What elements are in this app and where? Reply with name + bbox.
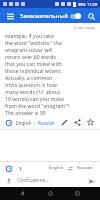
staticText: English (49, 165, 64, 171)
staticText: Сообщение... (17, 177, 50, 184)
staticText: from the word "anagram"? (5, 102, 70, 109)
button[interactable]: Voice input (4, 176, 13, 185)
staticText: English (16, 120, 32, 126)
staticText: 10 words) can you make (5, 95, 64, 102)
staticText: Y (19, 165, 23, 173)
staticText: 98% 11:39 (78, 2, 98, 7)
staticText: many words (+/- about (5, 88, 61, 95)
staticText: return over 60 words (5, 53, 57, 60)
button[interactable]: Сообщение... (17, 177, 86, 184)
button[interactable]: Toggle translation (68, 11, 83, 21)
staticText: that you can make with (5, 60, 62, 67)
button[interactable]: Recent apps (72, 188, 83, 199)
button[interactable]: Back (17, 188, 28, 199)
staticText: example, if you take (5, 32, 54, 39)
staticText: The answer is 39 (5, 109, 46, 116)
button[interactable]: Google translate (4, 118, 13, 127)
staticText: 2 мин назад (5, 25, 95, 30)
staticText: trivia question is how (5, 81, 57, 88)
button[interactable]: Google (4, 164, 13, 173)
button[interactable]: Share (72, 117, 83, 128)
button[interactable]: English (49, 165, 93, 171)
button[interactable]: Edit (59, 117, 70, 128)
button[interactable]: English (16, 120, 55, 126)
button[interactable]: Search (87, 11, 95, 21)
staticText: Занимательный (20, 12, 68, 20)
staticText: those individual letters. (5, 67, 62, 74)
staticText: Russian (38, 120, 55, 126)
button[interactable]: Favorite (85, 117, 96, 128)
button[interactable]: Open navigation menu (5, 11, 15, 21)
staticText: Russian (77, 165, 93, 171)
button[interactable]: Yandex (16, 164, 25, 173)
staticText: › (34, 120, 36, 126)
staticText: Actually, a common (5, 74, 53, 81)
button[interactable]: Home (45, 188, 56, 199)
staticText: anagram solver will (5, 46, 53, 53)
staticText: the word "website," the (5, 39, 62, 46)
button[interactable]: Send (86, 176, 96, 186)
